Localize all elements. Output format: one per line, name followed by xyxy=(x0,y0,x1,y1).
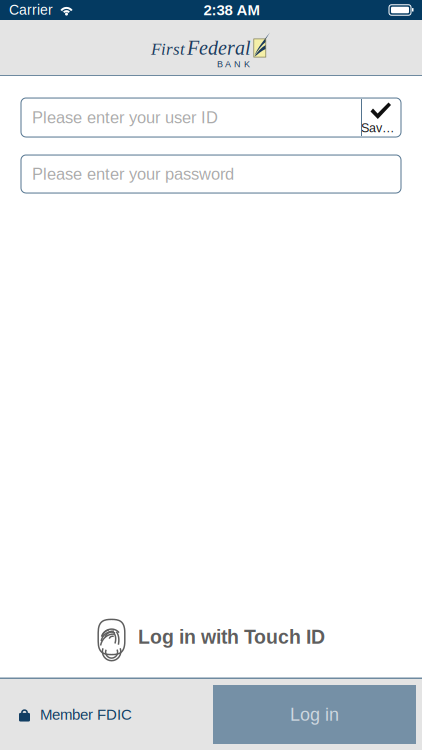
staticText: Save Id? xyxy=(361,121,401,135)
staticText: Member FDIC xyxy=(40,706,132,723)
staticText: Please enter your user ID xyxy=(32,108,218,127)
button[interactable]: Log in xyxy=(213,685,416,744)
staticText: Federal xyxy=(187,37,251,59)
staticText: Log in with Touch ID xyxy=(138,626,325,648)
staticText: B A N K xyxy=(217,59,250,69)
staticText: First xyxy=(151,40,185,58)
staticText: 2:38 AM xyxy=(203,2,259,18)
button[interactable]: Member FDIC xyxy=(0,706,132,723)
staticText: Please enter your password xyxy=(32,165,234,183)
staticText: Carrier xyxy=(9,2,53,18)
staticText: Log in xyxy=(290,704,339,724)
button[interactable]: Log in with Touch ID xyxy=(97,618,325,655)
button[interactable]: Save Id? xyxy=(361,99,401,136)
